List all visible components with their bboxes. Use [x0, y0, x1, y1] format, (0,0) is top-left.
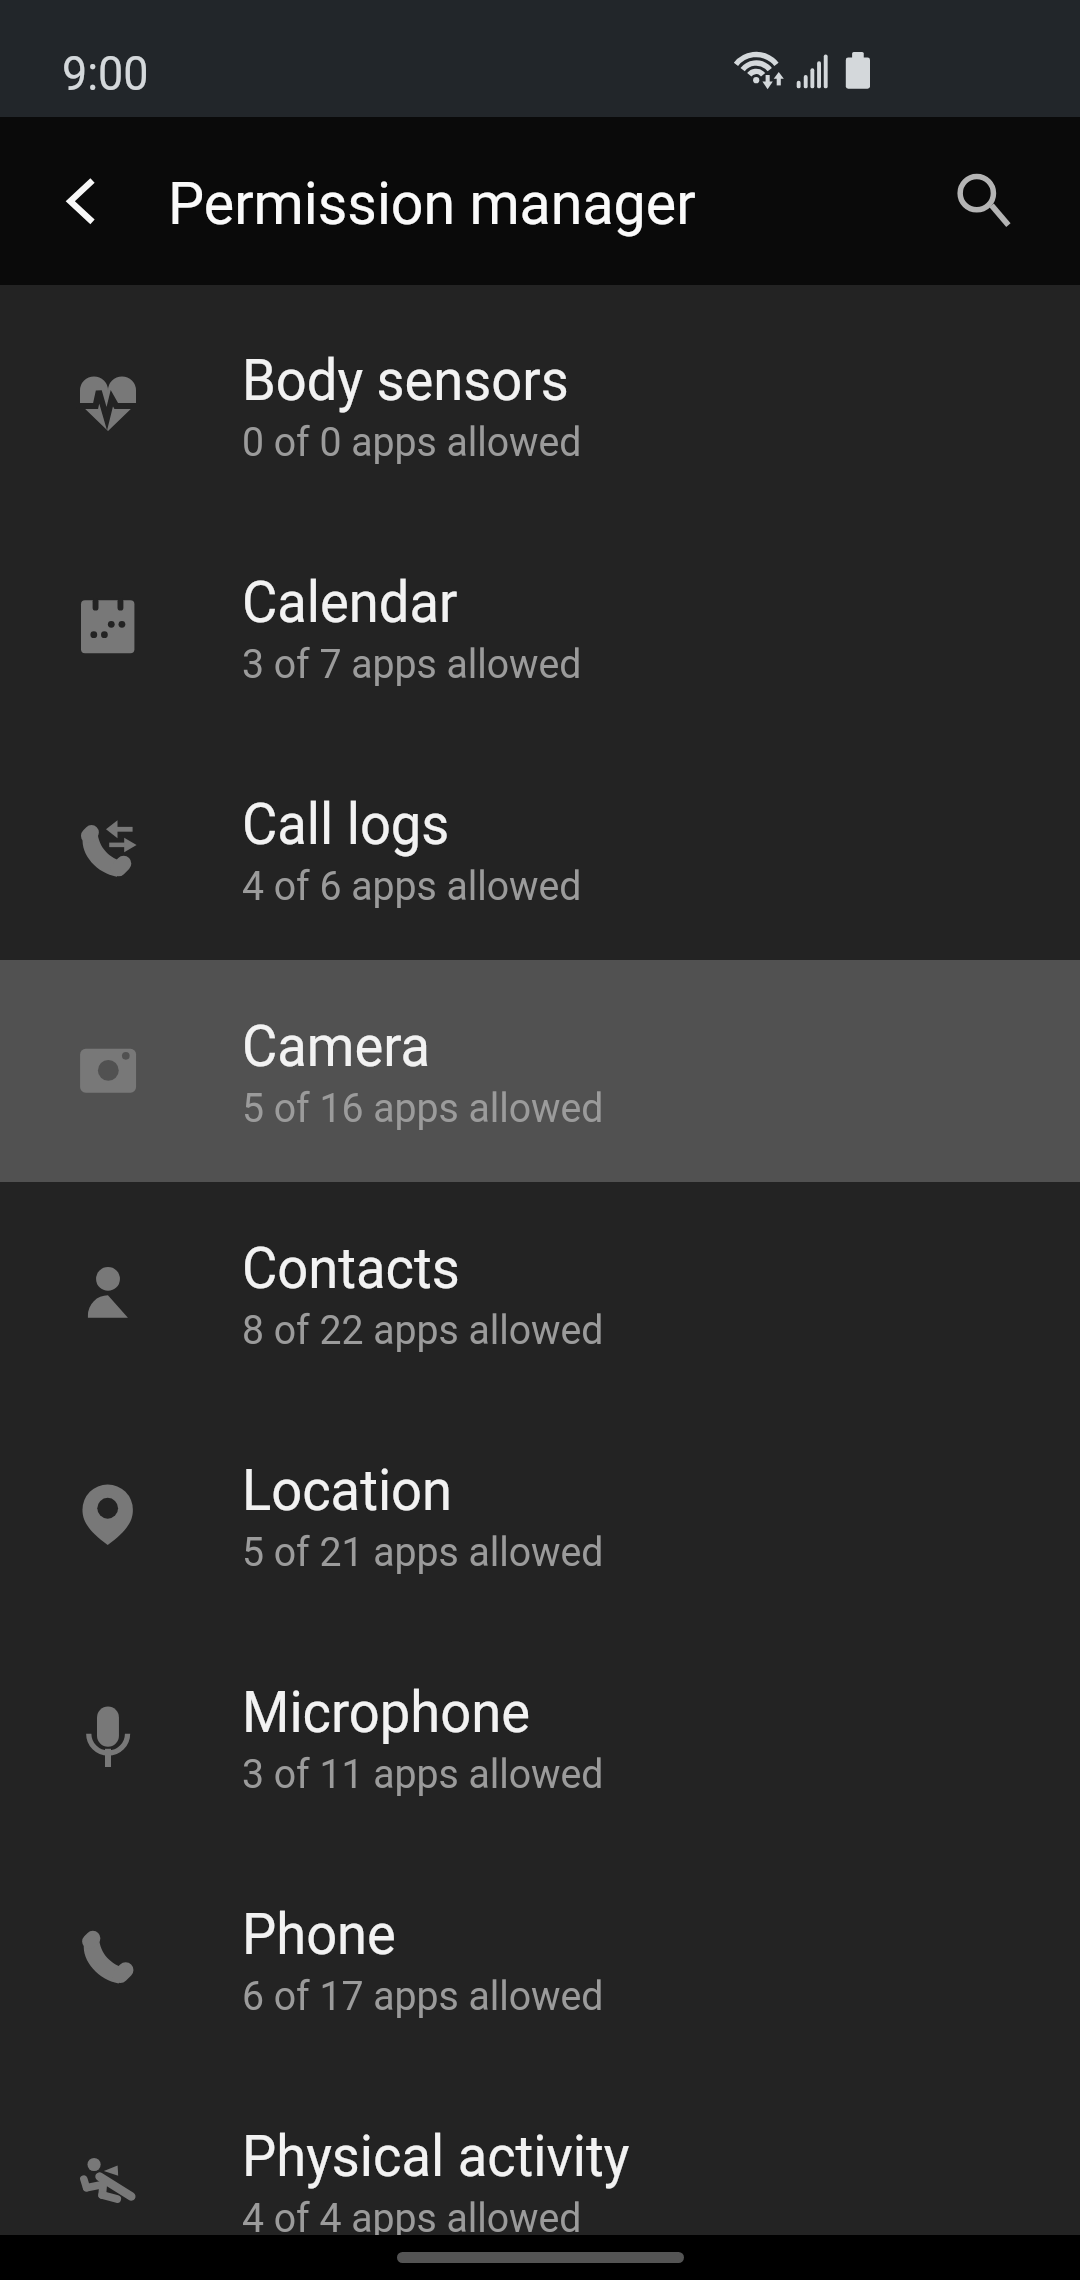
- staticText: Contacts: [242, 1235, 460, 1302]
- staticText: 4 of 6 apps allowed: [242, 861, 582, 910]
- button[interactable]: Call logs: [0, 738, 1080, 960]
- staticText: Location: [242, 1457, 452, 1524]
- staticText: 9:00: [62, 46, 149, 102]
- staticText: 5 of 16 apps allowed: [242, 1083, 604, 1132]
- staticText: 6 of 17 apps allowed: [242, 1971, 604, 2020]
- button[interactable]: Calendar: [0, 516, 1080, 738]
- staticText: 3 of 11 apps allowed: [242, 1749, 604, 1798]
- button[interactable]: Contacts: [0, 1182, 1080, 1404]
- staticText: 5 of 21 apps allowed: [242, 1527, 604, 1576]
- button[interactable]: Physical activity: [0, 2070, 1080, 2280]
- staticText: 3 of 7 apps allowed: [242, 639, 582, 688]
- staticText: 4 of 4 apps allowed: [242, 2193, 582, 2242]
- staticText: Phone: [242, 1901, 396, 1968]
- staticText: Microphone: [242, 1679, 530, 1746]
- staticText: Body sensors: [242, 347, 570, 414]
- button[interactable]: Microphone: [0, 1626, 1080, 1848]
- button[interactable]: Back: [20, 153, 116, 249]
- button[interactable]: Search: [928, 149, 1028, 249]
- button[interactable]: Body sensors: [0, 294, 1080, 516]
- staticText: 0 of 0 apps allowed: [242, 417, 582, 466]
- staticText: Physical activity: [242, 2123, 630, 2190]
- staticText: Calendar: [242, 569, 458, 636]
- staticText: Camera: [242, 1013, 431, 1080]
- staticText: Permission manager: [168, 169, 696, 239]
- button[interactable]: Phone: [0, 1848, 1080, 2070]
- button[interactable]: Location: [0, 1404, 1080, 1626]
- staticText: Call logs: [242, 791, 450, 858]
- button[interactable]: Camera: [0, 960, 1080, 1182]
- staticText: 8 of 22 apps allowed: [242, 1305, 604, 1354]
